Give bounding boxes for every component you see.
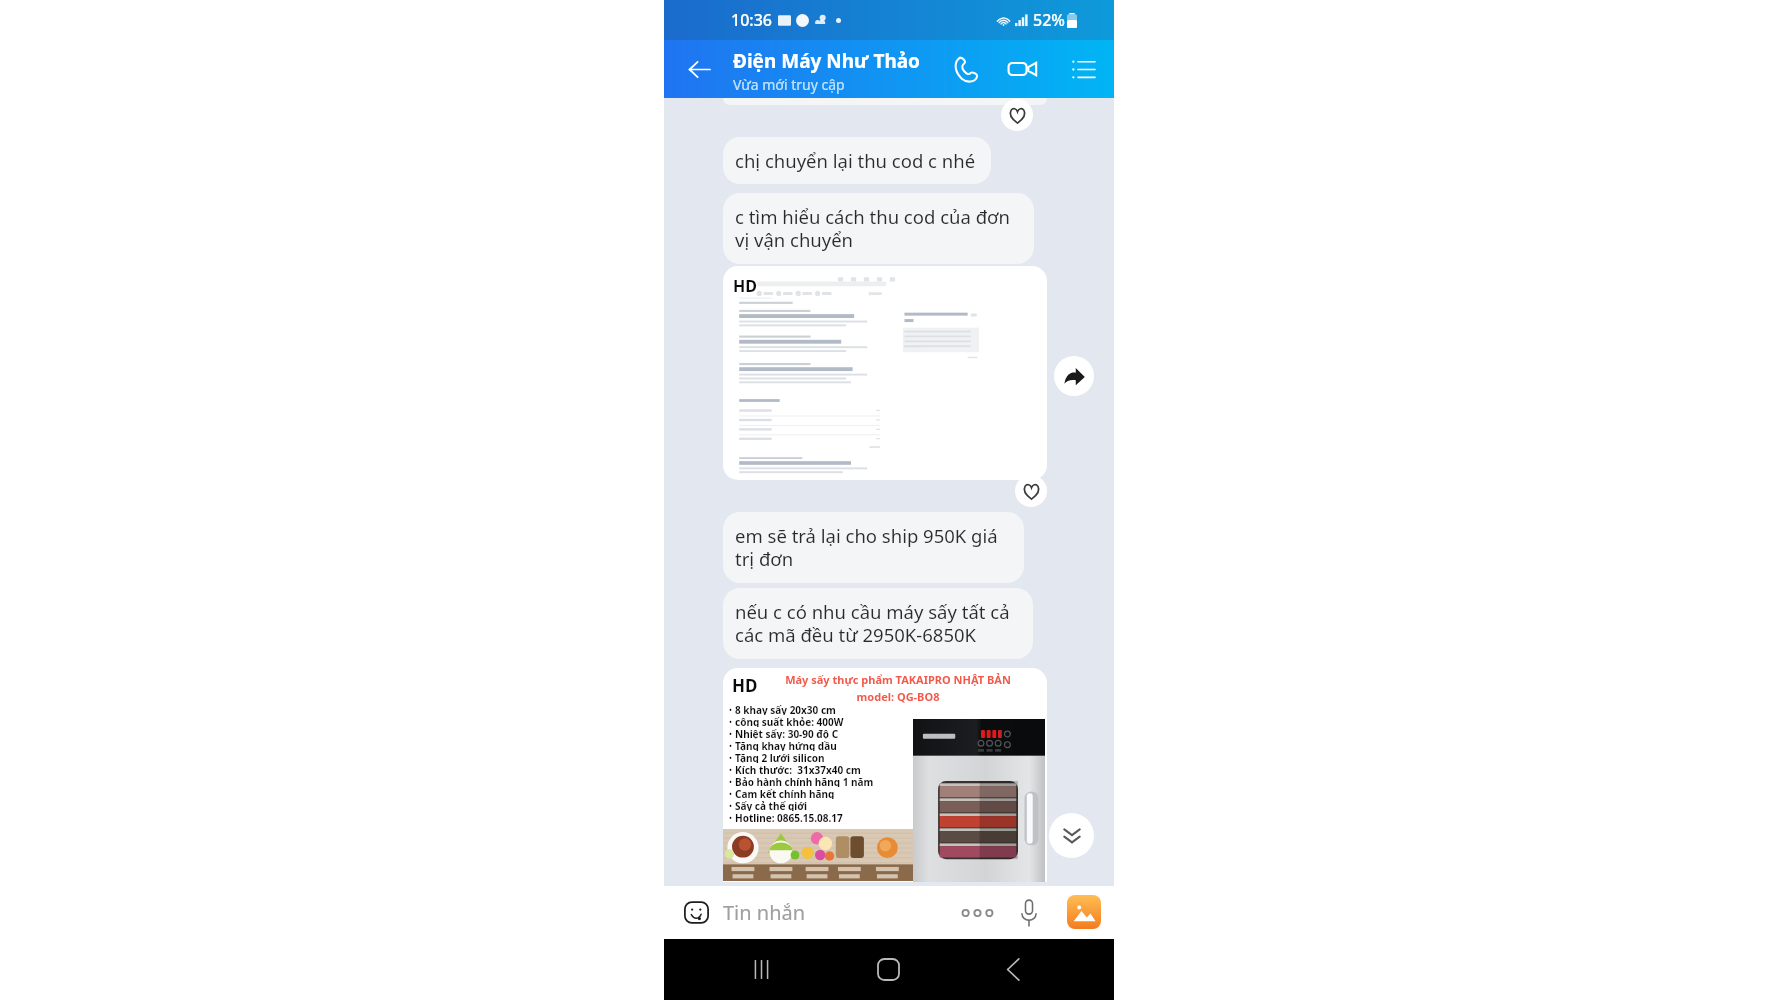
staticText: chị chuyển lại thu cod c nhé [735,148,976,173]
staticText: Cam kết chính hãng [735,787,835,799]
staticText: • [729,800,735,811]
button[interactable]: Back [674,40,724,98]
staticText: Điện Máy Như Thảo [733,48,920,74]
button[interactable]: Scroll to bottom [1049,813,1094,858]
button[interactable]: Back [988,939,1038,1000]
staticText: • [729,776,735,787]
staticText: c tìm hiểu cách thu cod của đơn vị vận c… [735,204,1024,253]
staticText: • [729,812,735,823]
button[interactable]: Send photo [1067,895,1101,929]
staticText: Nhiệt sấy: 30-90 độ C [735,727,839,739]
staticText: em sẽ trả lại cho ship 950K giá trị đơn [735,523,1014,572]
button[interactable]: Like [1015,475,1047,507]
button[interactable]: Forward [1054,356,1094,396]
button[interactable]: Home [863,939,913,1000]
staticText: • [729,764,735,775]
staticText: Kích thước: 31x37x40 cm [735,763,861,775]
button[interactable]: Sticker [678,886,715,939]
staticText: công suất khỏe: 400W [735,715,844,727]
button[interactable]: More options [957,886,997,939]
button[interactable]: Menu [1060,40,1106,98]
staticText: • [729,728,735,739]
staticText: Vừa mới truy cập [733,75,845,94]
staticText: 52% [1033,9,1065,31]
button[interactable]: Photo message [723,266,1047,480]
staticText: HD [732,674,758,697]
button[interactable]: Video call [999,40,1045,98]
staticText: 10:36 [731,9,772,31]
button[interactable]: c tìm hiểu cách thu cod của đơn vị vận c… [723,193,1034,264]
staticText: • [729,716,735,727]
staticText: HD [733,275,757,297]
staticText: Tin nhắn [723,899,806,926]
staticText: 8 khay sấy 20x30 cm [735,703,836,715]
button[interactable]: Photo message [723,668,1047,882]
staticText: Tặng 2 lưới silicon [735,751,825,763]
staticText: Sấy cả thế giới [735,799,808,811]
button[interactable]: Voice message [1008,886,1049,939]
staticText: model: QG-BO8 [777,689,1019,704]
staticText: Bảo hành chính hãng 1 năm [735,775,874,787]
staticText: nếu c có nhu cầu máy sấy tất cả các mã đ… [735,599,1023,648]
button[interactable]: chị chuyển lại thu cod c nhé [723,137,991,184]
staticText: • [729,788,735,799]
button[interactable]: nếu c có nhu cầu máy sấy tất cả các mã đ… [723,588,1033,659]
staticText: Máy sấy thực phẩm TAKAIPRO NHẬT BẢN [777,672,1019,687]
button[interactable]: Recent apps [736,939,786,1000]
staticText: Tặng khay hứng dầu [735,739,837,751]
button[interactable]: em sẽ trả lại cho ship 950K giá trị đơn [723,512,1024,583]
staticText: • [729,740,735,751]
staticText: • [729,704,735,715]
staticText: Hotline: 0865.15.08.17 [735,811,843,823]
button[interactable]: Call [942,40,988,98]
staticText: • [729,752,735,763]
button[interactable]: Like [1001,99,1033,131]
